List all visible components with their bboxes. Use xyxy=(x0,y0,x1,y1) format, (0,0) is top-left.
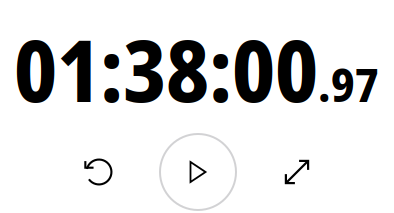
staticText: 01:38:00 xyxy=(14,11,318,127)
button[interactable]: Start xyxy=(160,134,236,210)
button[interactable]: Expand xyxy=(259,134,335,210)
staticText: .97 xyxy=(318,52,379,116)
button[interactable]: Reset xyxy=(61,134,137,210)
